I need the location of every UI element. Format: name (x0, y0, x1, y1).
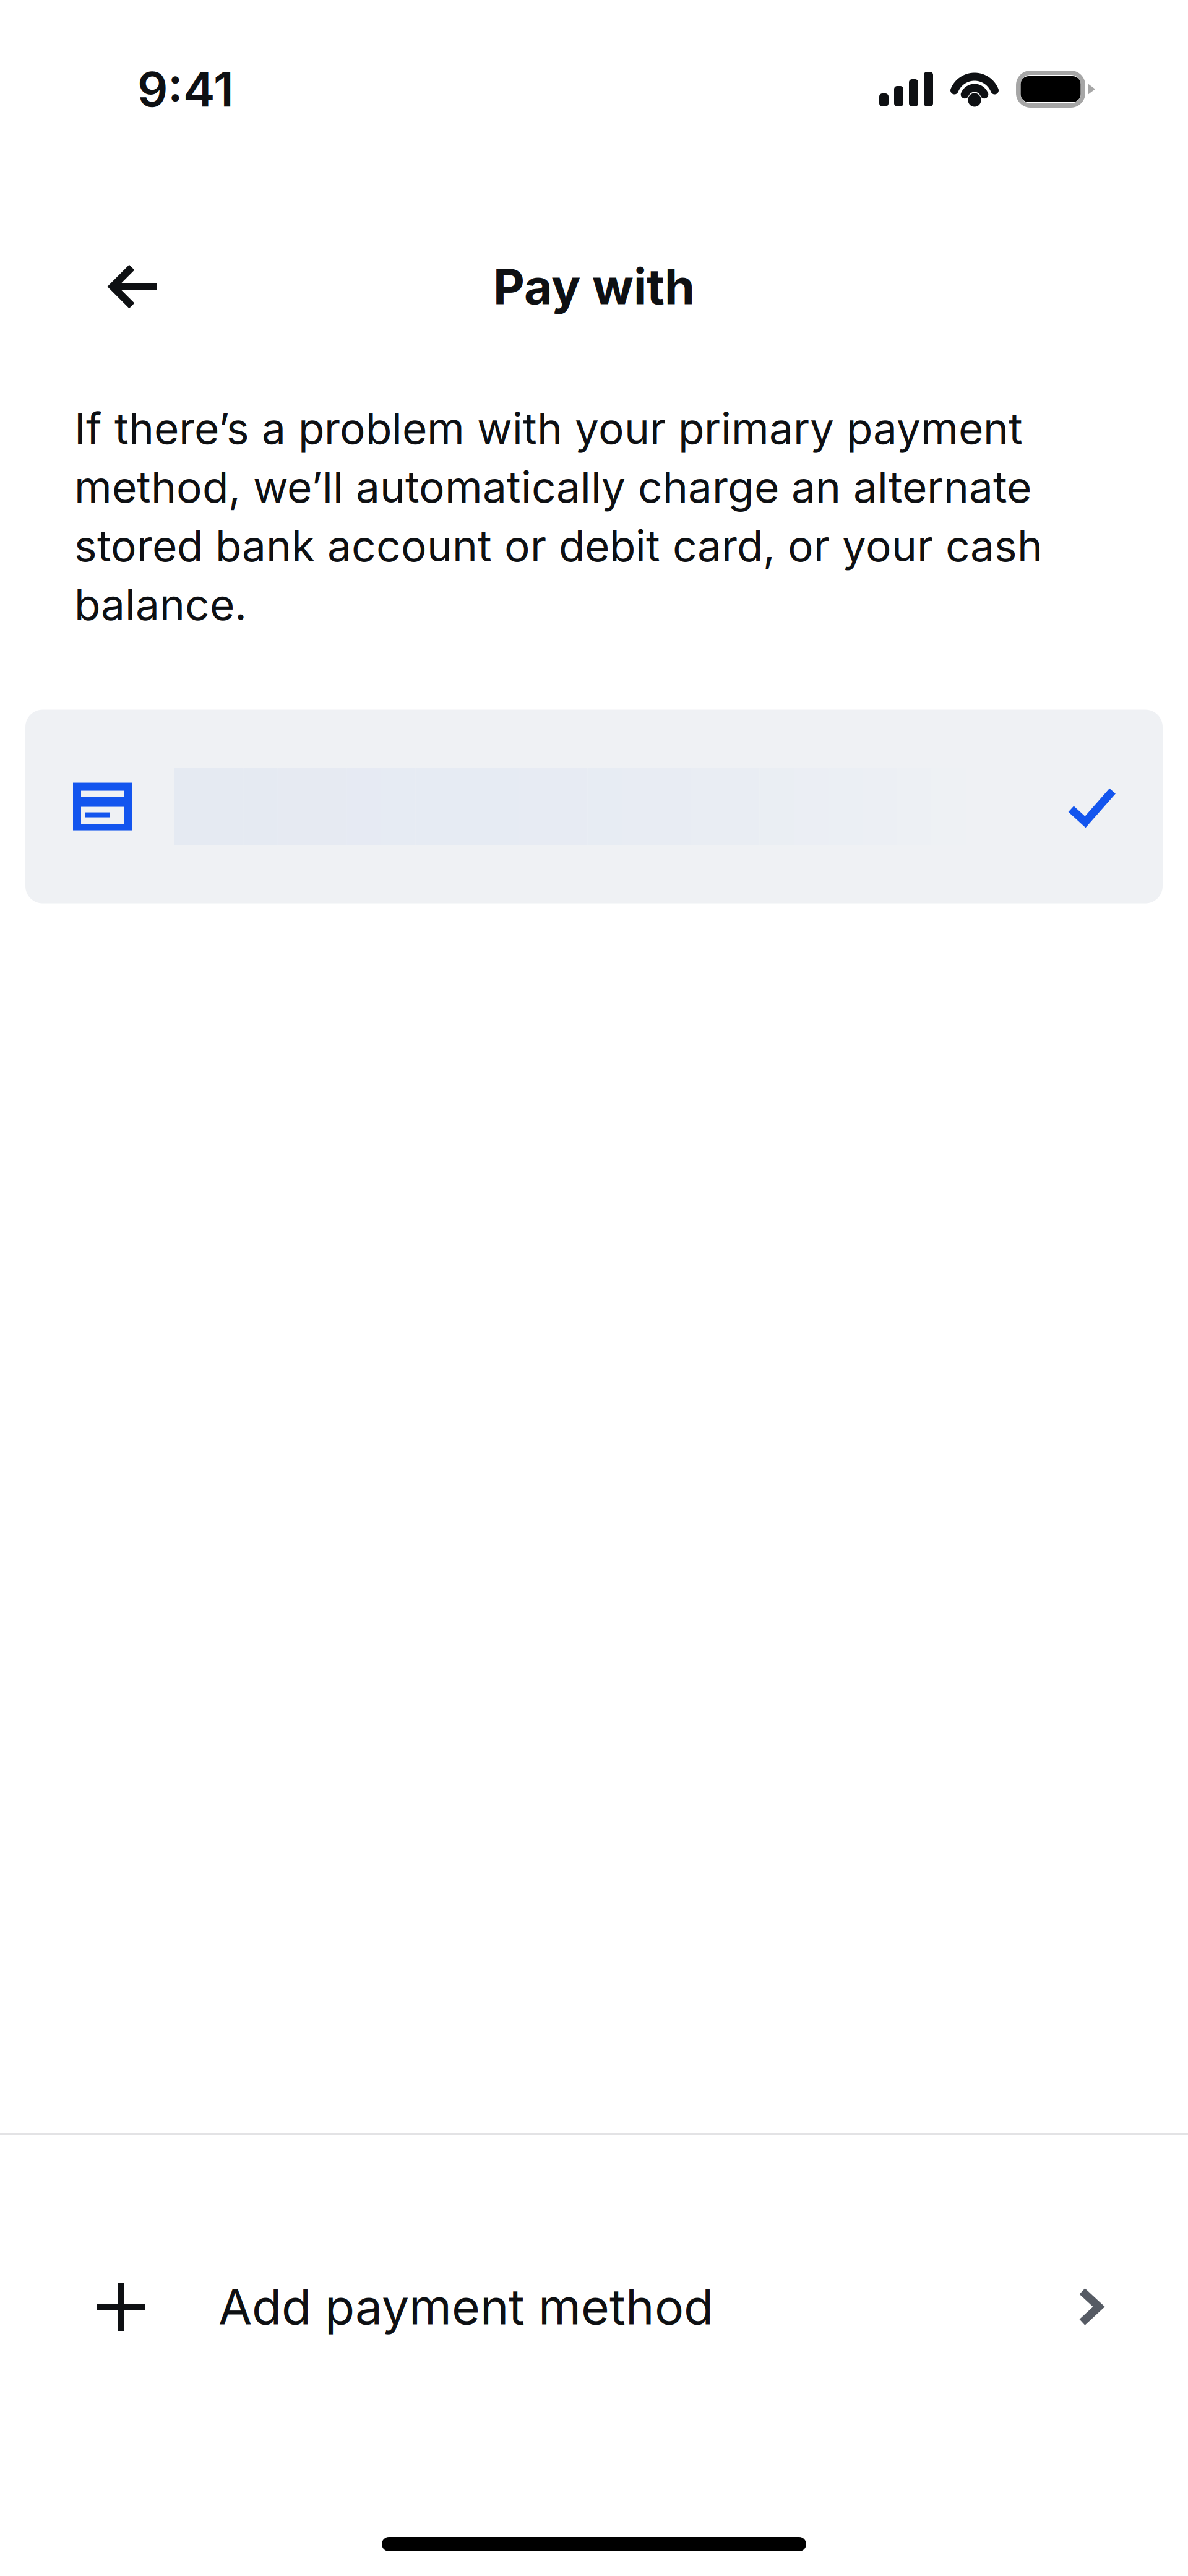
button[interactable]: Selected payment method (25, 710, 1163, 903)
staticText: 9:41 (137, 60, 234, 118)
button[interactable]: Add payment method (0, 2135, 1188, 2479)
staticText: Add payment method (218, 2277, 713, 2336)
staticText: If there’s a problem with your primary p… (74, 402, 1043, 630)
staticText: Pay with (493, 257, 695, 316)
button[interactable]: Back (84, 234, 183, 339)
